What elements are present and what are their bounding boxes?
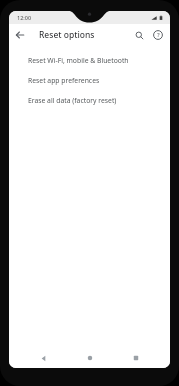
staticText: 12:00: [17, 14, 32, 21]
staticText: Erase all data (factory reset): [28, 96, 117, 105]
staticText: Reset options: [39, 29, 130, 41]
button[interactable]: Reset Wi-Fi, mobile & Bluetooth: [9, 50, 170, 70]
staticText: Reset app preferences: [28, 76, 100, 85]
button[interactable]: Recent apps: [123, 348, 149, 368]
button[interactable]: Navigate up: [9, 24, 31, 46]
button[interactable]: Home: [77, 348, 103, 368]
staticText: Reset Wi-Fi, mobile & Bluetooth: [28, 56, 129, 65]
button[interactable]: Erase all data (factory reset): [9, 90, 170, 110]
button[interactable]: Reset app preferences: [9, 70, 170, 90]
staticText: ?: [157, 31, 160, 39]
button[interactable]: Back: [30, 348, 56, 368]
button[interactable]: Search: [130, 24, 148, 46]
button[interactable]: Help: [148, 24, 168, 46]
